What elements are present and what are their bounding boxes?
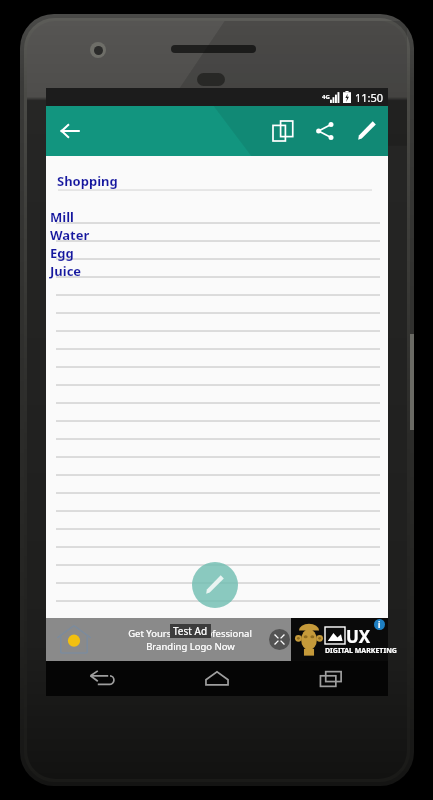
- button[interactable]: Recents: [274, 661, 388, 696]
- staticText: Mill: [50, 208, 74, 226]
- button[interactable]: Back: [46, 107, 94, 155]
- staticText: Branding Logo Now: [146, 640, 235, 653]
- button[interactable]: Share: [304, 110, 346, 152]
- staticText: Water: [50, 226, 90, 244]
- staticText: Get Yours Own Professional: [128, 627, 252, 640]
- button[interactable]: Expand ad: [269, 629, 290, 650]
- button[interactable]: Home: [160, 661, 274, 696]
- staticText: i: [378, 619, 381, 630]
- button[interactable]: Edit: [346, 110, 388, 152]
- staticText: Test Ad: [173, 624, 208, 638]
- staticText: Shopping: [57, 172, 118, 190]
- staticText: UX: [346, 625, 371, 648]
- button[interactable]: Back: [46, 661, 160, 696]
- staticText: Egg: [50, 244, 74, 262]
- button[interactable]: Copy: [262, 110, 304, 152]
- button[interactable]: Get Yours Own Professional: [46, 618, 388, 661]
- staticText: 4G: [322, 93, 330, 101]
- button[interactable]: New note: [192, 562, 238, 608]
- staticText: DIGITAL MARKETING: [325, 646, 397, 656]
- staticText: Juice: [50, 262, 82, 280]
- staticText: 11:50: [355, 90, 384, 105]
